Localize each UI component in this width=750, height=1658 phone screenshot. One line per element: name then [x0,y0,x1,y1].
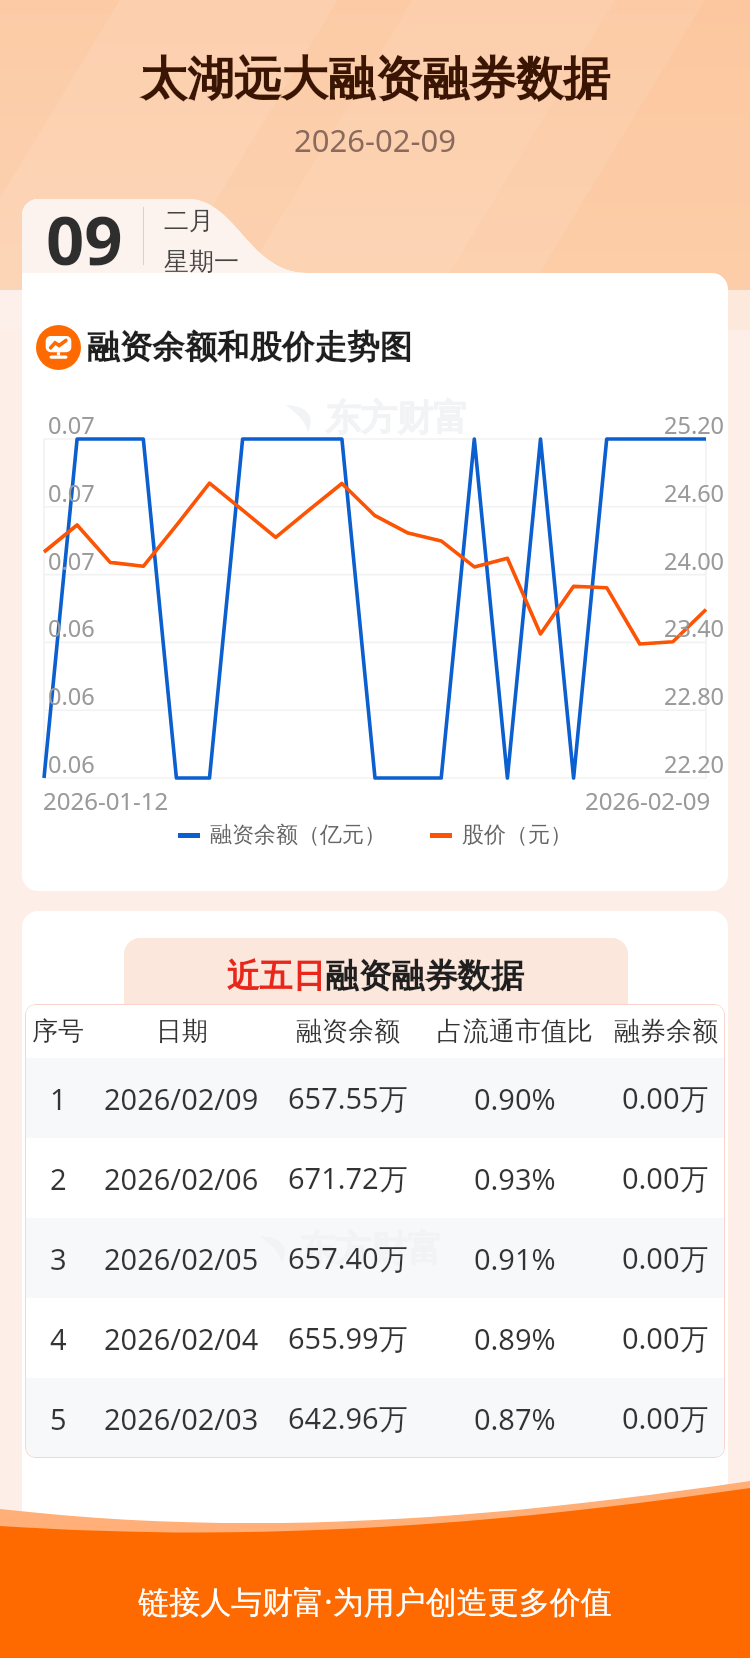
staticText: 0.06 [48,612,95,644]
staticText: 657.55万 [288,1078,408,1118]
staticText: 22.20 [664,748,725,780]
staticText: 日期 [156,1015,208,1048]
staticText: 0.90% [474,1079,556,1118]
staticText: 太湖远大融资融券数据 [0,50,750,109]
staticText: 24.00 [664,545,725,577]
staticText: 09 [46,193,123,284]
staticText: 2026/02/05 [104,1239,259,1278]
staticText: 2026/02/03 [104,1399,259,1438]
staticText: 2 [50,1159,67,1198]
staticText: 3 [50,1239,67,1278]
staticText: 融资余额和股价走势图 [87,327,412,368]
staticText: 0.87% [474,1399,556,1438]
staticText: 2026-01-12 [43,784,169,817]
staticText: 22.80 [664,680,725,712]
staticText: 0.06 [48,748,95,780]
staticText: 0.00万 [622,1078,709,1118]
staticText: 4 [50,1319,67,1358]
staticText: 链接人与财富·为用户创造更多价值 [0,1580,750,1622]
staticText: 642.96万 [288,1398,408,1438]
staticText: 0.91% [474,1239,556,1278]
staticText: 东方财富 [325,395,469,440]
staticText: 0.00万 [622,1158,709,1198]
staticText: 2026/02/09 [104,1079,259,1118]
staticText: 657.40万 [288,1238,408,1278]
staticText: 融券余额 [614,1015,718,1048]
staticText: 25.20 [664,409,725,441]
staticText: 0.93% [474,1159,556,1198]
staticText: 星期一 [164,246,239,277]
staticText: 2026/02/06 [104,1159,259,1198]
staticText: 2026-02-09 [585,784,711,817]
staticText: 近五日融资融券数据 [22,955,728,997]
staticText: 二月 [164,205,214,236]
staticText: 0.00万 [622,1318,709,1358]
staticText: 融资余额（亿元） [210,821,386,849]
staticText: 23.40 [664,612,725,644]
staticText: 5 [50,1399,67,1438]
staticText: 0.07 [48,477,95,509]
staticText: 东方财富 [299,1226,443,1271]
staticText: 24.60 [664,477,725,509]
staticText: 0.06 [48,680,95,712]
staticText: 股价（元） [462,821,572,849]
staticText: 671.72万 [288,1158,408,1198]
staticText: 1 [50,1079,67,1118]
staticText: 0.07 [48,409,95,441]
staticText: 0.00万 [622,1238,709,1278]
staticText: 0.00万 [622,1398,709,1438]
staticText: 0.89% [474,1319,556,1358]
staticText: 0.07 [48,545,95,577]
staticText: 2026-02-09 [0,119,750,161]
staticText: 融资余额 [296,1015,400,1048]
staticText: 占流通市值比 [437,1015,593,1048]
staticText: 655.99万 [288,1318,408,1358]
staticText: 序号 [32,1015,84,1048]
staticText: 2026/02/04 [104,1319,259,1358]
